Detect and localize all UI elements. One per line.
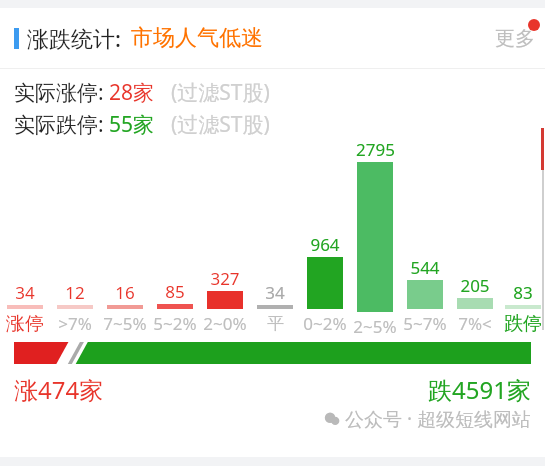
staticText: 市场人气低迷 — [131, 24, 263, 52]
staticText: 34 — [265, 281, 285, 304]
button[interactable]: 涨跌统计: — [0, 8, 545, 68]
staticText: (过滤ST股) — [171, 78, 270, 106]
staticText: 5~7% — [403, 312, 447, 334]
button[interactable]: 327 — [200, 138, 250, 334]
staticText: 2~5% — [353, 315, 397, 334]
staticText: 平 — [267, 313, 284, 334]
button[interactable]: 83 — [500, 138, 545, 334]
staticText: 327 — [210, 267, 240, 290]
staticText: 544 — [410, 256, 440, 279]
staticText: 更多 — [495, 26, 535, 51]
staticText: 涨停 — [6, 312, 44, 334]
staticText: 实际涨停: — [14, 78, 104, 106]
staticText: 公众号 · 超级短线网站 — [345, 406, 531, 432]
staticText: 0~2% — [303, 312, 347, 334]
other: WeChat — [324, 411, 340, 427]
staticText: 964 — [310, 233, 340, 256]
staticText: 55家 — [109, 110, 155, 138]
button[interactable]: 实际涨停: — [14, 78, 545, 106]
staticText: 涨474家 — [14, 373, 104, 406]
button[interactable]: 12 — [50, 138, 100, 334]
staticText: 34 — [15, 281, 35, 304]
staticText: 12 — [65, 281, 85, 304]
button[interactable]: 964 — [300, 138, 350, 334]
staticText: 16 — [115, 281, 135, 304]
staticText: 5~2% — [153, 312, 197, 334]
button[interactable]: 85 — [150, 138, 200, 334]
staticText: 实际跌停: — [14, 110, 104, 138]
staticText: 205 — [460, 274, 490, 297]
staticText: 涨跌统计: — [27, 23, 121, 53]
button[interactable]: 更多 — [495, 26, 535, 51]
button[interactable]: 2795 — [350, 138, 400, 334]
button[interactable]: 16 — [100, 138, 150, 334]
button[interactable]: 205 — [450, 138, 500, 334]
staticText: 83 — [513, 281, 533, 304]
button[interactable] — [14, 342, 531, 364]
button[interactable]: 544 — [400, 138, 450, 334]
button[interactable]: 34 — [250, 138, 300, 334]
staticText: (过滤ST股) — [171, 110, 270, 138]
staticText: 跌4591家 — [428, 373, 531, 406]
staticText: 2~0% — [203, 312, 247, 334]
staticText: 7~5% — [103, 312, 147, 334]
button[interactable]: 34 — [0, 138, 50, 334]
staticText: 28家 — [109, 78, 155, 106]
staticText: 2795 — [356, 138, 395, 161]
staticText: 85 — [165, 280, 185, 303]
staticText: 7%< — [458, 312, 492, 334]
staticText: >7% — [58, 312, 92, 334]
staticText: 跌停 — [504, 312, 542, 334]
button[interactable]: 实际跌停: — [14, 110, 545, 138]
